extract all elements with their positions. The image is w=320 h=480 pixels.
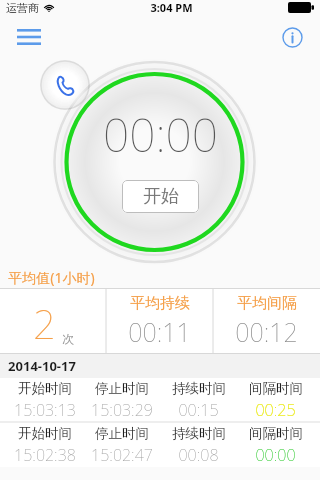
staticText: 运营商 bbox=[6, 1, 39, 15]
staticText: 00:08 bbox=[178, 444, 219, 466]
button[interactable]: Menu bbox=[10, 20, 48, 54]
button[interactable]: 开始时间 bbox=[0, 378, 320, 422]
staticText: 停止时间 bbox=[95, 425, 149, 442]
staticText: 次 bbox=[62, 331, 74, 346]
staticText: 2 bbox=[33, 296, 56, 350]
staticText: 持续时间 bbox=[172, 380, 226, 397]
staticText: 00:12 bbox=[235, 315, 298, 349]
staticText: 持续时间 bbox=[172, 425, 226, 442]
staticText: 开始时间 bbox=[18, 380, 72, 397]
staticText: 开始 bbox=[143, 185, 179, 208]
staticText: 停止时间 bbox=[95, 380, 149, 397]
button[interactable]: Info bbox=[274, 20, 310, 54]
staticText: 2014-10-17 bbox=[8, 357, 76, 375]
button[interactable]: 开始时间 bbox=[0, 423, 320, 467]
staticText: 15:02:38 bbox=[14, 444, 76, 466]
staticText: 15:03:13 bbox=[14, 399, 76, 421]
staticText: 开始时间 bbox=[18, 425, 72, 442]
button[interactable]: Call bbox=[40, 60, 90, 110]
staticText: 00:00 bbox=[103, 103, 218, 166]
staticText: 15:02:47 bbox=[91, 444, 153, 466]
staticText: 平均持续 bbox=[130, 294, 190, 313]
staticText: 间隔时间 bbox=[249, 425, 303, 442]
staticText: 00:25 bbox=[255, 399, 296, 421]
staticText: 15:03:29 bbox=[91, 399, 153, 421]
staticText: 00:15 bbox=[178, 399, 219, 421]
staticText: 00:11 bbox=[128, 315, 191, 349]
button[interactable]: 开始 bbox=[122, 180, 199, 213]
staticText: 00:00 bbox=[255, 444, 296, 466]
staticText: 平均值(1小时) bbox=[8, 268, 95, 287]
staticText: 平均间隔 bbox=[237, 294, 297, 313]
staticText: 间隔时间 bbox=[249, 380, 303, 397]
staticText: 3:04 PM bbox=[150, 0, 193, 15]
